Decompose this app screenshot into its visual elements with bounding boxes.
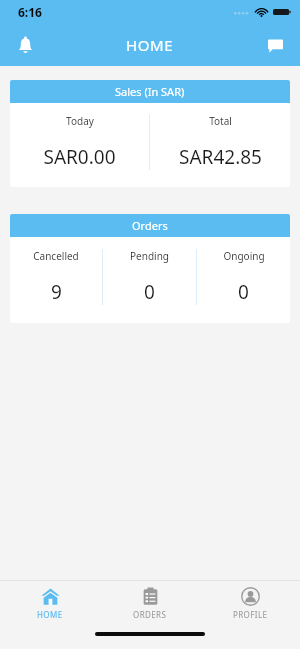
button[interactable]: Messages <box>256 26 294 64</box>
button[interactable]: PROFILE <box>200 581 300 625</box>
button[interactable]: Total <box>150 114 290 170</box>
button[interactable]: Ongoing <box>197 249 290 305</box>
staticText: 9 <box>51 279 62 305</box>
staticText: 6:16 <box>18 4 42 20</box>
button[interactable]: HOME <box>0 581 100 625</box>
staticText: PROFILE <box>233 609 268 620</box>
button[interactable]: Pending <box>103 249 196 305</box>
staticText: ORDERS <box>133 609 167 620</box>
button[interactable]: Notifications <box>6 26 44 64</box>
staticText: Pending <box>130 249 169 263</box>
button[interactable]: ORDERS <box>100 581 200 625</box>
staticText: SAR42.85 <box>179 144 262 170</box>
staticText: Total <box>209 114 232 128</box>
staticText: Today <box>66 114 94 128</box>
staticText: HOME <box>126 35 174 55</box>
staticText: Sales (In SAR) <box>115 84 185 99</box>
button[interactable]: Today <box>10 114 149 170</box>
staticText: Orders <box>132 218 168 233</box>
staticText: 0 <box>238 279 249 305</box>
staticText: SAR0.00 <box>43 144 116 170</box>
staticText: Cancelled <box>33 249 79 263</box>
button[interactable]: Cancelled <box>10 249 102 305</box>
staticText: HOME <box>37 609 63 620</box>
staticText: 0 <box>144 279 155 305</box>
staticText: Ongoing <box>223 249 265 263</box>
